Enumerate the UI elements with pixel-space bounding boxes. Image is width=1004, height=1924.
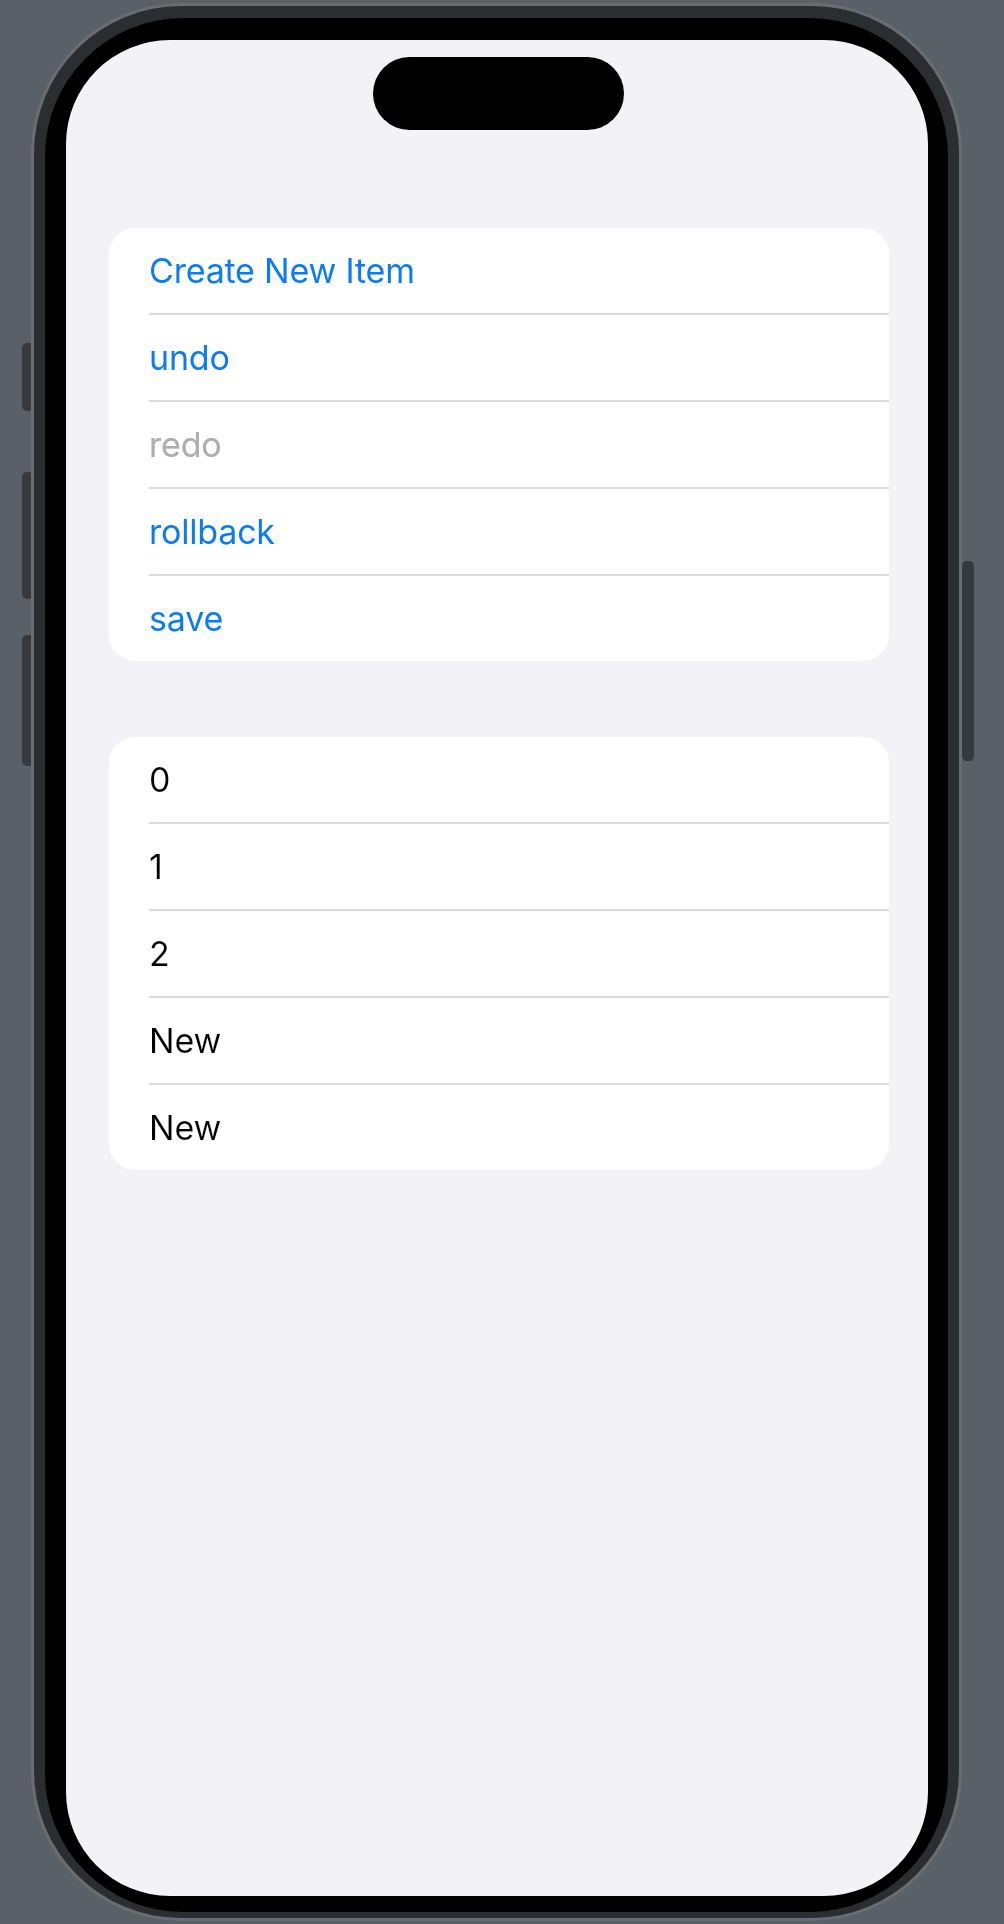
button[interactable]: undo: [109, 315, 889, 400]
button[interactable]: 1: [109, 824, 889, 909]
button[interactable]: Create New Item: [109, 228, 889, 313]
button[interactable]: redo: [109, 402, 889, 487]
staticText: New: [149, 1020, 222, 1061]
staticText: Create New Item: [149, 250, 415, 291]
staticText: undo: [149, 337, 230, 378]
staticText: 2: [149, 933, 170, 974]
button[interactable]: save: [109, 576, 889, 661]
button[interactable]: 0: [109, 737, 889, 822]
button[interactable]: New: [109, 1085, 889, 1170]
staticText: 1: [149, 846, 163, 887]
staticText: New: [149, 1107, 222, 1148]
staticText: save: [149, 598, 224, 639]
button[interactable]: New: [109, 998, 889, 1083]
staticText: redo: [149, 424, 222, 465]
staticText: rollback: [149, 511, 275, 552]
button[interactable]: 2: [109, 911, 889, 996]
button[interactable]: rollback: [109, 489, 889, 574]
staticText: 0: [149, 759, 171, 800]
